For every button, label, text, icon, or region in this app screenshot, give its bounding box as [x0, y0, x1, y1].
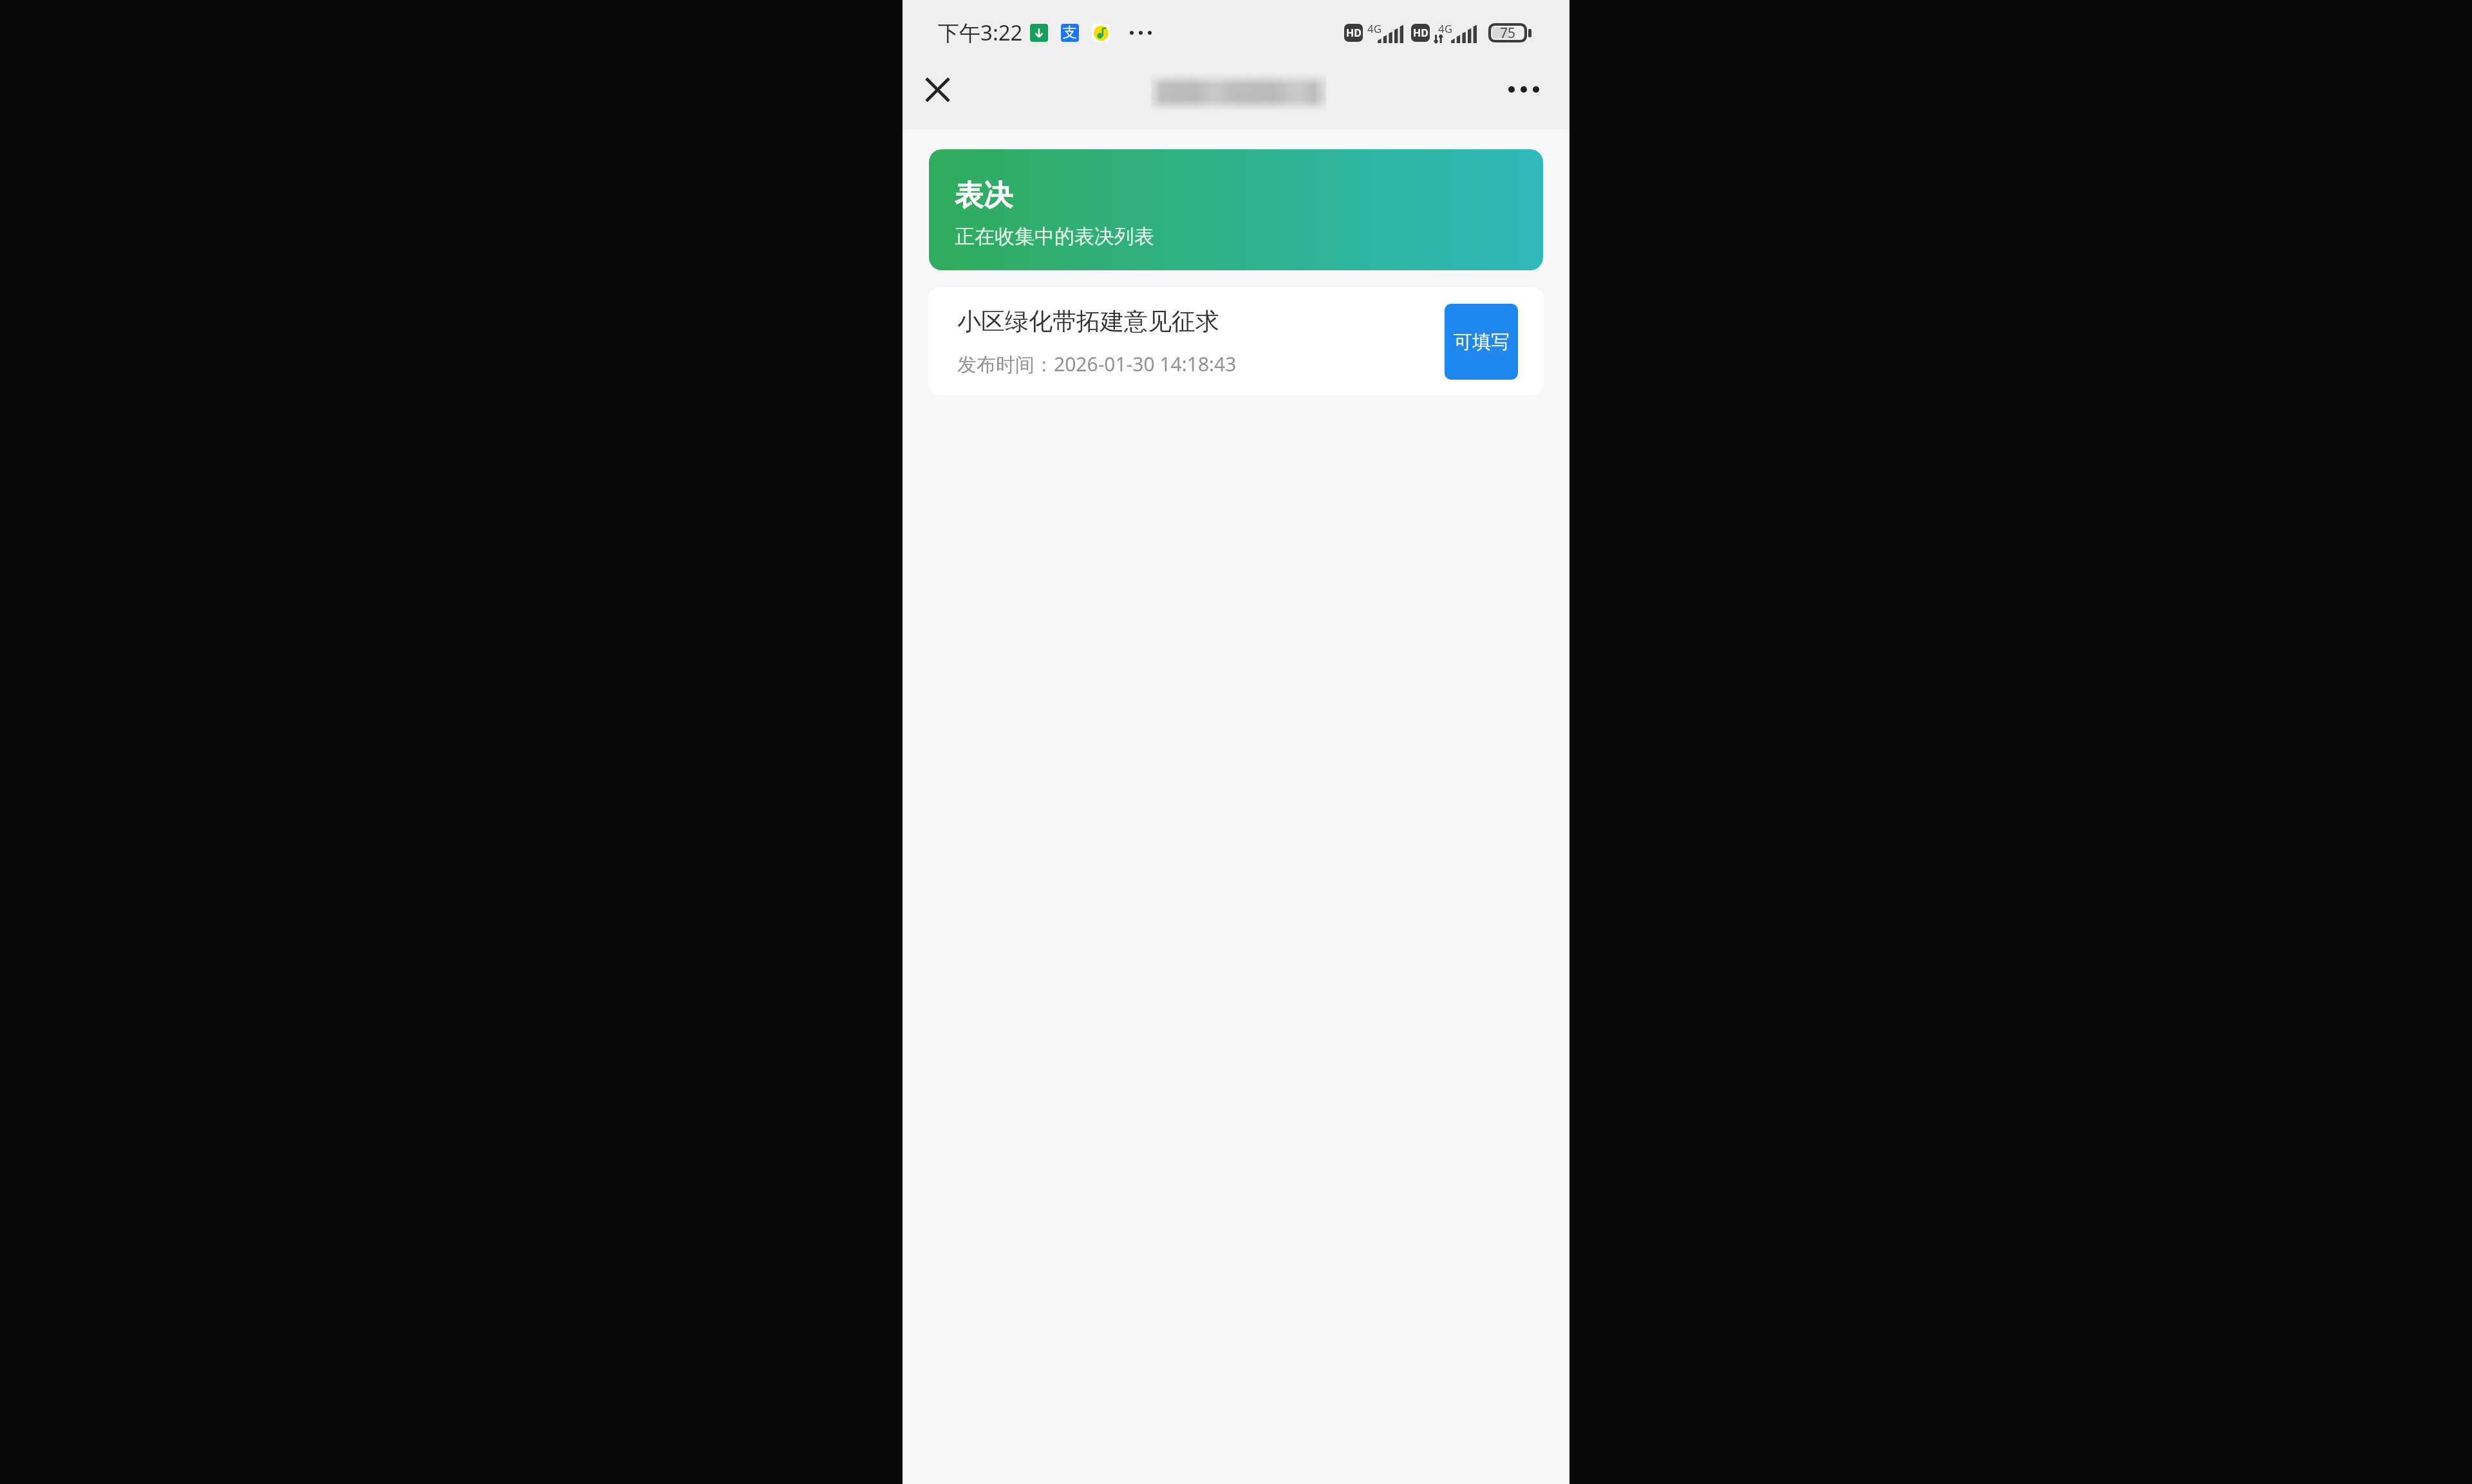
staticText: 表决: [955, 178, 1013, 214]
staticText: 下午3:22: [938, 18, 1023, 47]
staticText: 发布时间：2026-01-30 14:18:43: [957, 351, 1237, 377]
staticText: HD: [1346, 26, 1362, 40]
staticText: 75: [1500, 24, 1516, 42]
button[interactable]: Close: [913, 65, 962, 114]
staticText: 可填写: [1454, 330, 1510, 354]
button[interactable]: 可填写: [1445, 304, 1518, 380]
staticText: 正在收集中的表决列表: [955, 224, 1154, 249]
staticText: 4G: [1438, 21, 1453, 36]
staticText: 支: [1063, 24, 1077, 42]
staticText: HD: [1413, 26, 1428, 40]
button[interactable]: 小区绿化带拓建意见征求: [929, 288, 1543, 395]
staticText: 4G: [1367, 21, 1382, 36]
staticText: 小区绿化带拓建意见征求: [957, 306, 1219, 337]
button[interactable]: 表决: [929, 149, 1543, 270]
button[interactable]: More options: [1499, 65, 1548, 114]
